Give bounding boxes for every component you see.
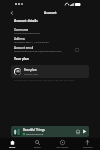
button[interactable]: Account email [0, 44, 100, 53]
staticText: Musterstrasse 1, 12345 Berlin [14, 40, 49, 43]
button[interactable]: Address [0, 35, 100, 44]
staticText: maxmustermann0815@mustermail.com [14, 49, 62, 52]
button[interactable]: Beautiful Things [11, 126, 89, 137]
staticText: Account details [14, 19, 38, 23]
staticText: Spotify Free [24, 72, 38, 75]
staticText: Search [34, 146, 41, 149]
button[interactable]: Search [25, 138, 50, 150]
staticText: Username [14, 28, 29, 32]
staticText: Premium [83, 146, 93, 149]
button[interactable]: Free plan [11, 65, 89, 78]
button[interactable]: Connect to a device [74, 128, 81, 135]
staticText: Address [14, 37, 25, 41]
staticText: Beautiful Things [23, 128, 45, 132]
staticText: Your plan [14, 57, 29, 61]
staticText: Benson Boone [26, 132, 44, 135]
staticText: Account [44, 11, 57, 15]
staticText: maxmustermann0815 [14, 31, 41, 34]
staticText: Manage your subscription, payment method… [14, 79, 75, 82]
staticText: Account email [14, 46, 34, 50]
staticText: Home [9, 146, 16, 149]
button[interactable]: Home [0, 138, 25, 150]
button[interactable]: Your Library [50, 138, 75, 150]
button[interactable]: Premium [75, 138, 100, 150]
button[interactable]: Play [81, 128, 88, 135]
staticText: Your Library [56, 146, 69, 149]
button[interactable]: Username [0, 26, 100, 35]
staticText: Free plan [24, 68, 37, 72]
button[interactable]: Back [7, 8, 16, 17]
